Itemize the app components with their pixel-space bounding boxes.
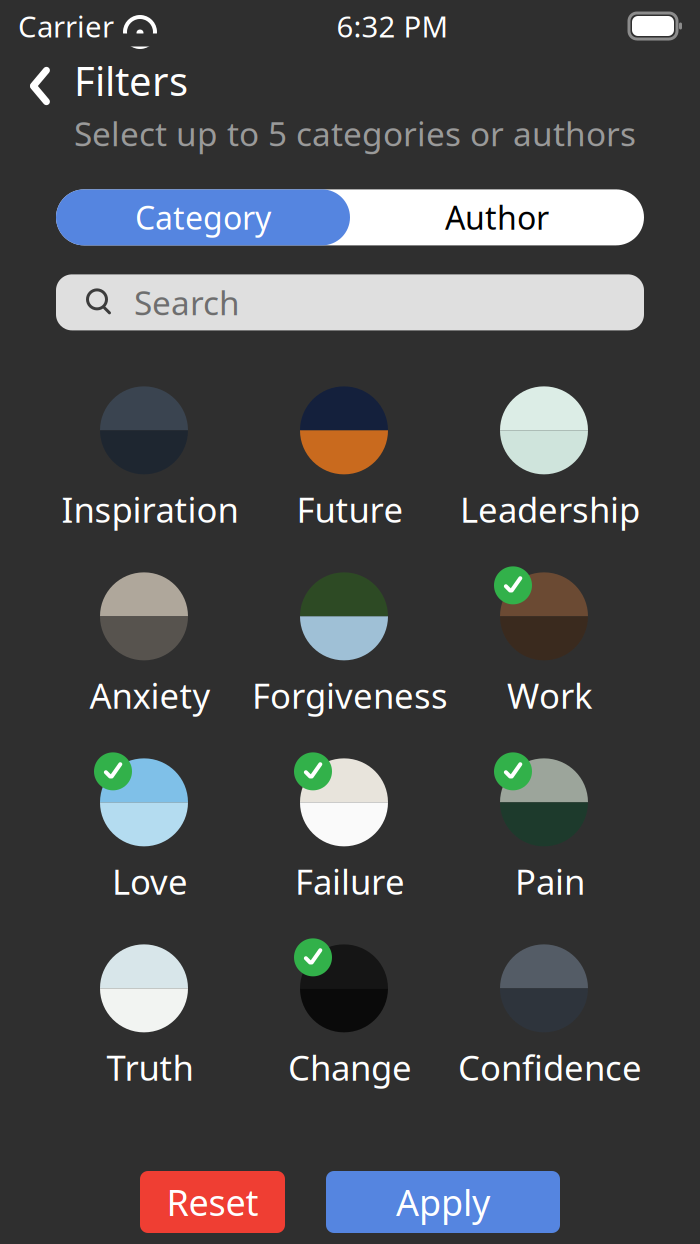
staticText: Select up to 5 categories or authors: [74, 111, 636, 155]
button[interactable]: Author: [350, 189, 644, 245]
button[interactable]: Back: [8, 54, 72, 118]
staticText: Anxiety: [89, 672, 210, 718]
button[interactable]: Pain: [450, 756, 650, 906]
staticText: Truth: [106, 1044, 193, 1090]
staticText: Leadership: [460, 486, 640, 532]
staticText: Work: [507, 672, 593, 718]
staticText: Future: [296, 486, 403, 532]
button[interactable]: Confidence: [450, 942, 650, 1092]
button[interactable]: Failure: [250, 756, 450, 906]
staticText: Inspiration: [61, 486, 238, 532]
staticText: 6:32 PM: [336, 6, 448, 45]
staticText: Carrier: [18, 6, 114, 45]
button[interactable]: Truth: [50, 942, 250, 1092]
staticText: Reset: [166, 1178, 258, 1226]
button[interactable]: Inspiration: [50, 384, 250, 534]
staticText: Failure: [295, 858, 405, 904]
staticText: Change: [288, 1044, 412, 1090]
button[interactable]: Love: [50, 756, 250, 906]
button[interactable]: Search: [56, 274, 644, 330]
button[interactable]: Apply: [326, 1171, 560, 1233]
staticText: Author: [445, 196, 549, 239]
staticText: Category: [135, 196, 271, 239]
staticText: Pain: [515, 858, 585, 904]
staticText: Filters: [74, 54, 188, 107]
staticText: Confidence: [458, 1044, 642, 1090]
button[interactable]: Work: [450, 570, 650, 720]
button[interactable]: Future: [250, 384, 450, 534]
staticText: Forgiveness: [252, 672, 448, 718]
button[interactable]: Reset: [140, 1171, 285, 1233]
staticText: Search: [134, 280, 240, 325]
button[interactable]: Category: [56, 189, 350, 245]
button[interactable]: Anxiety: [50, 570, 250, 720]
button[interactable]: Leadership: [450, 384, 650, 534]
staticText: Apply: [396, 1178, 490, 1226]
staticText: Love: [112, 858, 188, 904]
button[interactable]: Forgiveness: [250, 570, 450, 720]
button[interactable]: Change: [250, 942, 450, 1092]
